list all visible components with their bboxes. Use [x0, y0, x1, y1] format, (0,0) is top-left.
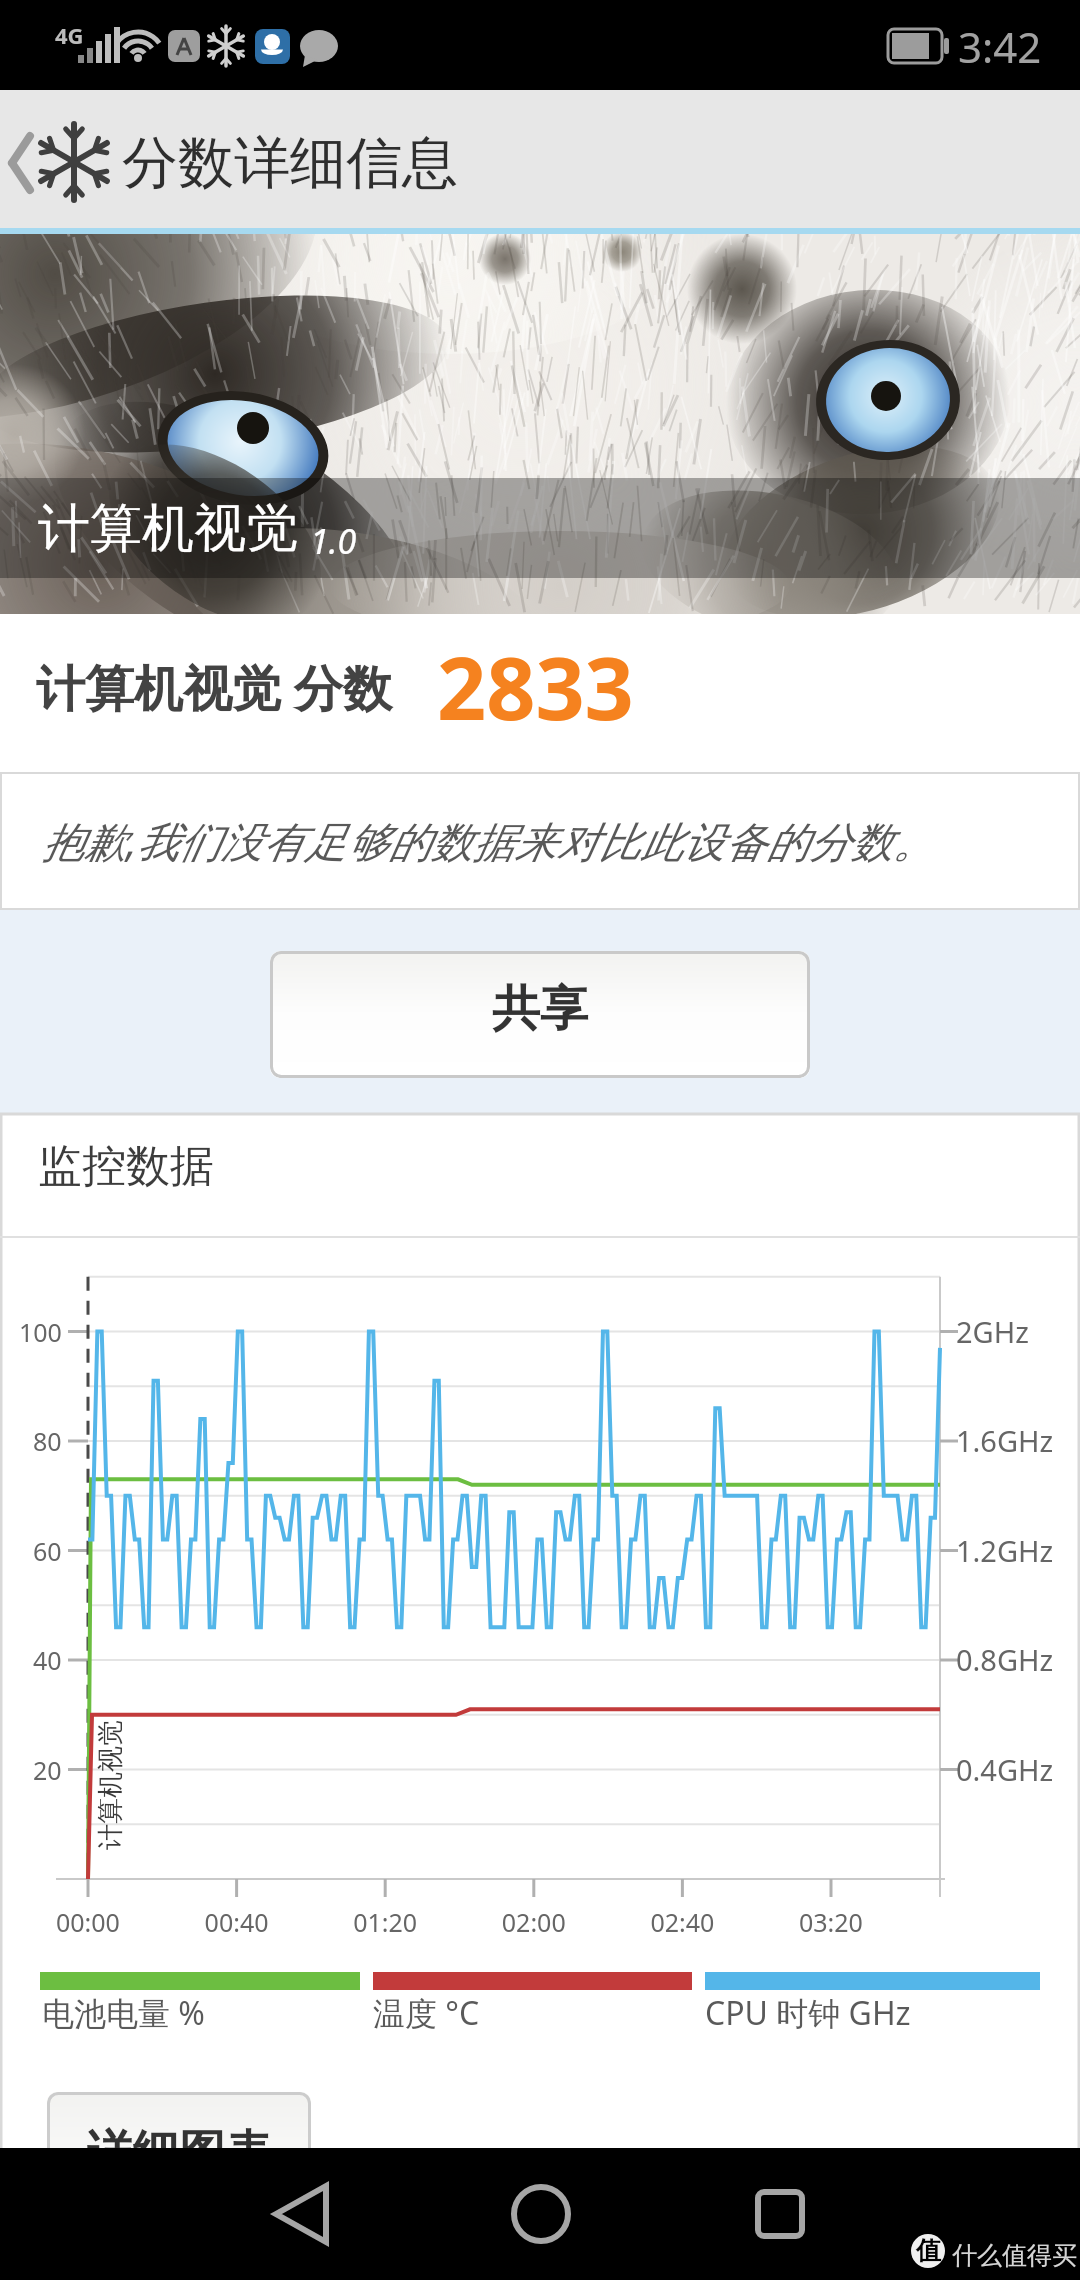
staticText: 4G — [55, 20, 84, 50]
button[interactable]: 详细图表 — [47, 2092, 311, 2202]
staticText: 分数详细信息 — [122, 128, 458, 199]
staticText: 计算机视觉 — [38, 496, 298, 562]
staticText: 详细图表 — [87, 2124, 271, 2182]
staticText: 抱歉,我们没有足够的数据来对比此设备的分数。 — [42, 812, 935, 869]
button[interactable] — [246, 2164, 356, 2264]
staticText: 监控数据 — [38, 1139, 214, 1194]
staticText: 1.0 — [310, 518, 357, 564]
button[interactable]: 分数详细信息 — [0, 90, 1080, 228]
staticText: 计算机视觉 分数 — [36, 654, 392, 721]
staticText: 值 — [916, 2235, 941, 2266]
button[interactable] — [486, 2164, 596, 2264]
staticText: 共享 — [492, 979, 588, 1039]
staticText: 3:42 — [958, 18, 1042, 75]
staticText: 什么值得买 — [952, 2240, 1077, 2271]
staticText: 2833 — [437, 628, 634, 745]
button[interactable] — [725, 2164, 835, 2264]
button[interactable]: 共享 — [270, 951, 810, 1078]
